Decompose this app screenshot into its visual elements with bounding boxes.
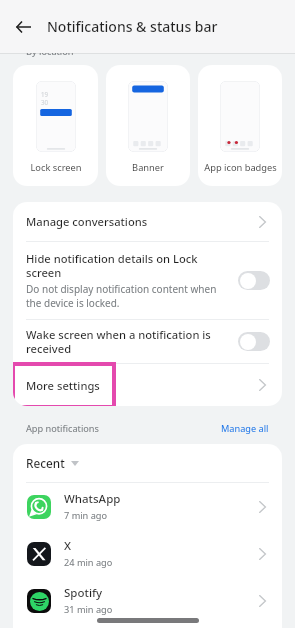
staticText: Wake screen when a notification is recei… (26, 327, 220, 356)
button[interactable]: Open (252, 375, 272, 395)
button[interactable]: Spotify (13, 577, 282, 624)
button[interactable]: Open (252, 212, 272, 232)
button[interactable]: Toggle (238, 332, 270, 351)
staticText: App icon badges (204, 161, 277, 174)
button[interactable]: Manage all (221, 422, 269, 435)
button[interactable]: Recent (13, 444, 282, 482)
button[interactable]: App icon badges (198, 65, 282, 186)
staticText: 19 (41, 90, 49, 98)
button[interactable]: Wake screen when a notification is recei… (13, 320, 282, 363)
button[interactable]: Manage conversations (13, 202, 282, 241)
staticText: App notifications (26, 422, 99, 435)
button[interactable]: Open (252, 544, 272, 564)
button[interactable]: WhatsApp (13, 483, 282, 530)
staticText: Notifications & status bar (47, 17, 218, 36)
button[interactable]: Banner (106, 65, 190, 186)
staticText: More settings (26, 378, 252, 393)
button[interactable]: Open (252, 591, 272, 611)
staticText: Do not display notification content when… (26, 282, 220, 310)
staticText: 7 min ago (64, 509, 108, 522)
staticText: Manage conversations (26, 214, 252, 229)
staticText: By location (26, 45, 74, 58)
staticText: X (64, 538, 72, 554)
staticText: Lock screen (30, 161, 82, 174)
staticText: Hide notification details on Lock screen (26, 251, 220, 280)
staticText: 31 min ago (64, 603, 113, 616)
staticText: 30 (41, 98, 49, 106)
button[interactable]: Back (2, 6, 44, 48)
button[interactable]: X (13, 530, 282, 577)
button[interactable]: More settings (13, 364, 282, 406)
staticText: Recent (26, 455, 65, 471)
staticText: 24 min ago (64, 556, 113, 569)
staticText: Banner (132, 161, 164, 174)
button[interactable]: Open (252, 497, 272, 517)
button[interactable]: Toggle (238, 271, 270, 290)
button[interactable]: Hide notification details on Lock screen (13, 242, 282, 319)
button[interactable]: 19 (13, 65, 98, 186)
staticText: Spotify (64, 585, 103, 601)
staticText: WhatsApp (64, 491, 121, 507)
staticText: Manage all (221, 422, 269, 435)
